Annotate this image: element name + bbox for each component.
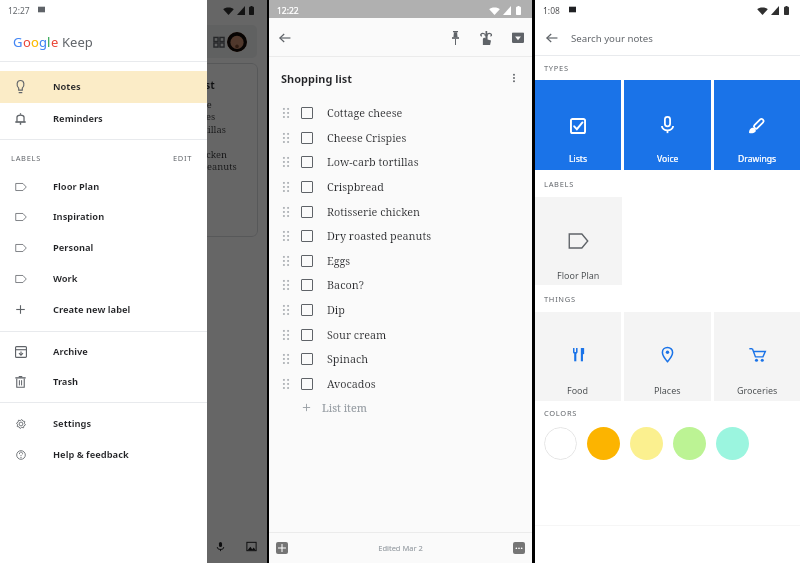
staticText: Crispbread (147, 135, 196, 148)
staticText: Personal (53, 241, 94, 254)
staticText: Drawings (738, 153, 777, 165)
button[interactable]: Floor Plan (535, 197, 622, 285)
staticText: o (23, 33, 31, 51)
staticText: o (31, 33, 39, 51)
staticText: Floor Plan (557, 269, 600, 281)
staticText: COLORS (544, 408, 578, 418)
staticText: Dry roasted peanuts (147, 160, 237, 173)
staticText: e (51, 33, 59, 51)
staticText: LABELS (11, 153, 42, 163)
staticText: Create new label (53, 303, 131, 316)
staticText: Rotisserie chicken (327, 204, 420, 219)
button[interactable]: Bacon? (269, 272, 532, 297)
button[interactable]: Inspiration (0, 201, 207, 232)
button[interactable]: Spinach (269, 346, 532, 371)
staticText: Work (53, 272, 78, 285)
staticText: Inspiration (53, 210, 105, 223)
staticText: g (39, 33, 47, 51)
staticText: List item (322, 400, 367, 415)
staticText: Reminders (53, 112, 103, 125)
button[interactable]: Help & feedback (0, 439, 207, 470)
button[interactable]: Notes (0, 71, 207, 102)
staticText: Low-carb tortillas (147, 123, 226, 136)
staticText: Cottage cheese (147, 98, 212, 111)
button[interactable]: Color (544, 427, 577, 460)
button[interactable]: More (513, 542, 525, 554)
button[interactable]: Sour cream (269, 322, 532, 347)
button[interactable]: Voice (624, 80, 711, 170)
staticText: 1:08 (543, 5, 560, 17)
staticText: Eggs (327, 253, 351, 268)
staticText: 12:27 (8, 5, 30, 17)
button[interactable]: Work (0, 263, 207, 294)
button[interactable]: Food (535, 312, 621, 401)
button[interactable]: Dry roasted peanuts (269, 223, 532, 248)
button[interactable]: Color (716, 427, 749, 460)
button[interactable]: Lists (535, 80, 621, 170)
button[interactable]: List item (269, 395, 532, 419)
button[interactable]: Avocados (269, 371, 532, 396)
button[interactable]: Eggs (269, 248, 532, 273)
button[interactable]: Cottage cheese (269, 100, 532, 125)
button[interactable]: Color (587, 427, 620, 460)
staticText: TYPES (544, 63, 569, 73)
button[interactable]: Dip (269, 297, 532, 322)
staticText: Cheese Crispies (147, 110, 216, 123)
button[interactable]: Archive (505, 24, 531, 50)
staticText: Spinach (327, 351, 369, 366)
button[interactable]: Trash (0, 366, 207, 397)
staticText: Voice (657, 153, 679, 165)
button[interactable]: Drawings (714, 80, 800, 170)
staticText: Avocados (327, 376, 376, 391)
staticText: Dip (327, 302, 345, 317)
staticText: Help & feedback (53, 448, 129, 461)
staticText: Shopping list (147, 78, 215, 92)
button[interactable]: Color (673, 427, 706, 460)
button[interactable]: Floor Plan (0, 171, 207, 202)
button[interactable]: Crispbread (269, 174, 532, 199)
button[interactable]: Low-carb tortillas (269, 149, 532, 174)
staticText: G (13, 33, 23, 51)
staticText: Shopping list (281, 71, 353, 86)
staticText: Keep (62, 33, 93, 51)
staticText: Floor Plan (53, 180, 100, 193)
staticText: Lists (569, 153, 588, 165)
staticText: Dry roasted peanuts (327, 228, 432, 243)
staticText: Trash (53, 375, 79, 388)
staticText: Low-carb tortillas (327, 154, 419, 169)
button[interactable]: Cheese Crispies (269, 125, 532, 150)
button[interactable]: Places (624, 312, 711, 401)
staticText: l (47, 33, 51, 51)
button[interactable]: Back (544, 30, 560, 46)
staticText: Groceries (737, 384, 778, 396)
button[interactable]: Back (277, 30, 293, 46)
button[interactable]: Settings (0, 408, 207, 439)
button[interactable]: Reminder (473, 25, 499, 51)
button[interactable]: Reminders (0, 103, 207, 134)
staticText: Rotisserie chicken (147, 148, 228, 161)
button[interactable]: Groceries (714, 312, 800, 401)
staticText: Crispbread (327, 179, 384, 194)
staticText: Search your notes (571, 32, 653, 45)
button[interactable]: Create new label (0, 294, 207, 325)
button[interactable]: Color (630, 427, 663, 460)
button[interactable]: Add (276, 542, 288, 554)
staticText: Search your notes (43, 35, 125, 48)
staticText: Settings (53, 417, 92, 430)
staticText: Bacon? (327, 277, 364, 292)
button[interactable]: Personal (0, 232, 207, 263)
staticText: 12:22 (277, 5, 299, 17)
staticText: Cottage cheese (327, 105, 403, 120)
button[interactable]: Pin (442, 25, 468, 51)
staticText: Archive (53, 345, 88, 358)
staticText: Food (567, 384, 589, 396)
button[interactable]: Archive (0, 336, 207, 367)
button[interactable]: Rotisserie chicken (269, 199, 532, 224)
staticText: THINGS (544, 294, 576, 304)
button[interactable]: More options (506, 70, 522, 86)
staticText: Cheese Crispies (327, 130, 407, 145)
staticText: Edited Mar 2 (269, 543, 532, 553)
staticText: LABELS (544, 179, 575, 189)
staticText: EDIT (173, 153, 193, 163)
staticText: Places (654, 384, 681, 396)
